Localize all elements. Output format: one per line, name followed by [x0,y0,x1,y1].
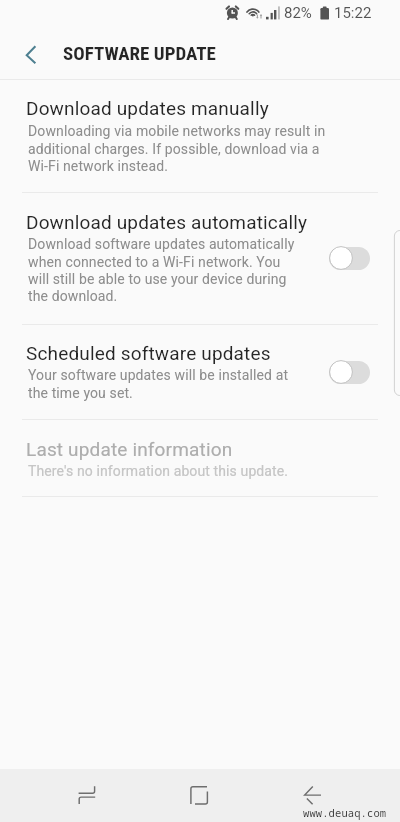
staticText: Downloading via mobile networks may resu… [28,123,330,174]
button[interactable]: Download updates automatically [0,193,400,324]
staticText: Last update information [26,438,233,460]
staticText: 15:22 [334,4,372,22]
button[interactable]: Back [257,769,369,822]
staticText: There's no information about this update… [28,463,330,479]
staticText: Your software updates will be installed … [28,367,300,401]
button[interactable]: Recent apps [31,769,143,822]
staticText: Download updates manually [26,97,269,119]
button[interactable]: Toggle switch, off [322,355,377,389]
staticText: Scheduled software updates [26,342,271,364]
button[interactable]: Toggle switch, off [322,241,377,275]
button[interactable]: Last update information [0,420,400,496]
button[interactable]: Download updates manually [0,79,400,192]
staticText: Download updates automatically [26,211,308,233]
button[interactable]: Home [143,769,255,822]
button[interactable]: Navigate up [10,35,50,75]
button[interactable]: Scheduled software updates [0,324,400,419]
staticText: www.deuaq.com [303,806,387,820]
staticText: SOFTWARE UPDATE [63,42,216,64]
staticText: 82% [284,4,312,22]
staticText: Download software updates automatically … [28,236,300,304]
